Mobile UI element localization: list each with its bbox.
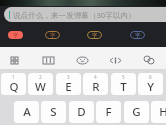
staticText: Y <box>147 79 154 95</box>
staticText: 6 <box>149 74 152 80</box>
staticText: G <box>132 104 141 120</box>
button[interactable]: 字 <box>45 31 60 39</box>
button[interactable]: 1 <box>1 73 26 95</box>
staticText: 1 <box>12 74 15 80</box>
staticText: 字 <box>92 32 98 39</box>
staticText: F <box>105 104 112 120</box>
button[interactable]: 3 <box>56 73 81 95</box>
button[interactable]: 4 <box>83 73 108 95</box>
staticText: 字 <box>13 32 19 39</box>
staticText: S <box>50 104 57 120</box>
button[interactable]: Emoji <box>75 53 89 67</box>
staticText: R <box>92 79 100 95</box>
button[interactable]: 字 <box>87 31 102 39</box>
button[interactable]: F <box>96 101 121 123</box>
button[interactable]: Input settings <box>142 53 156 67</box>
staticText: 字 <box>135 32 141 39</box>
staticText: 2 <box>39 74 42 80</box>
staticText: 3 <box>67 74 70 80</box>
staticText: W <box>35 79 46 95</box>
button[interactable]: S <box>41 101 66 123</box>
staticText: T <box>120 79 127 95</box>
staticText: Q <box>9 79 19 95</box>
staticText: 4 <box>94 74 97 80</box>
staticText: 说点什么，来一发弹幕（30字以内） <box>13 10 136 20</box>
button[interactable]: Sticker panel <box>7 53 21 67</box>
button[interactable]: A <box>14 101 39 123</box>
staticText: E <box>65 79 72 95</box>
button[interactable]: G <box>124 101 149 123</box>
button[interactable]: H <box>151 101 166 123</box>
button[interactable]: 说点什么，来一发弹幕（30字以内） <box>4 7 166 22</box>
button[interactable]: Move cursor <box>108 53 122 67</box>
staticText: D <box>77 104 86 120</box>
staticText: A <box>23 104 31 120</box>
button[interactable]: 字 <box>130 31 145 39</box>
button[interactable]: 6 <box>138 73 163 95</box>
staticText: H <box>159 104 166 120</box>
button[interactable]: Keyboard layout <box>41 53 55 67</box>
staticText: 5 <box>122 74 125 80</box>
button[interactable]: D <box>69 101 94 123</box>
button[interactable]: 字 <box>8 31 23 39</box>
button[interactable]: 5 <box>111 73 136 95</box>
staticText: 字 <box>50 32 56 39</box>
button[interactable]: 2 <box>28 73 53 95</box>
